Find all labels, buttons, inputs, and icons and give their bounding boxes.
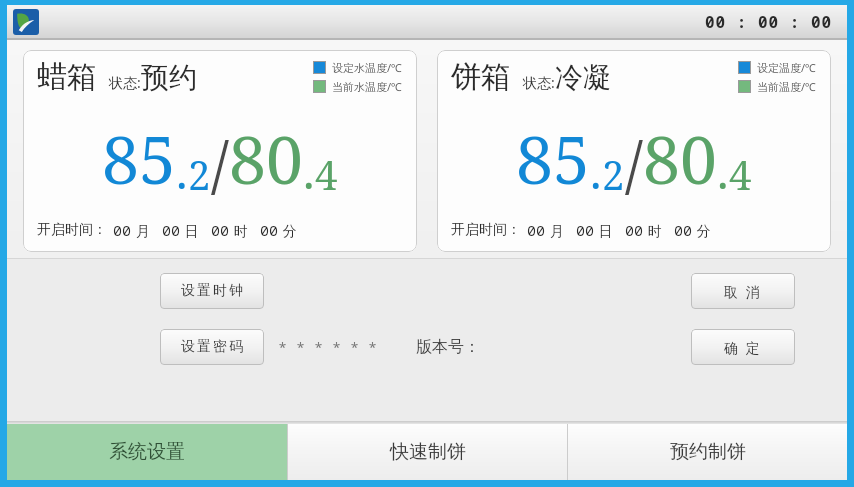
staticText: 确 定 xyxy=(724,338,762,357)
staticText: 设定温度/℃ xyxy=(757,60,817,75)
staticText: 设置时钟 xyxy=(180,282,244,300)
staticText: 00 xyxy=(162,220,181,240)
staticText: 开启时间： xyxy=(37,221,107,239)
staticText: 00 xyxy=(625,220,644,240)
staticText: . xyxy=(717,140,729,203)
staticText: 80 xyxy=(229,113,303,203)
staticText: . xyxy=(303,140,315,203)
staticText: 饼箱 xyxy=(451,58,511,96)
staticText: 月 xyxy=(546,221,564,240)
staticText: 时 xyxy=(644,221,662,240)
button[interactable]: 系统设置 xyxy=(7,424,287,480)
button[interactable]: 饼箱 xyxy=(437,50,831,252)
button[interactable]: 预约制饼 xyxy=(568,424,847,480)
staticText: 设置密码 xyxy=(180,338,244,356)
staticText: 00 xyxy=(260,220,279,240)
staticText: 00 : 00 : 00 xyxy=(705,11,833,33)
staticText: 时 xyxy=(230,221,248,240)
staticText: 版本号： xyxy=(416,337,480,357)
staticText: 00 xyxy=(113,220,132,240)
staticText: / xyxy=(211,121,229,205)
button[interactable]: 蜡箱 xyxy=(23,50,417,252)
staticText: 预约制饼 xyxy=(670,440,746,464)
staticText: 00 xyxy=(674,220,693,240)
button[interactable]: 设置时钟 xyxy=(160,273,264,309)
staticText: 00 xyxy=(576,220,595,240)
staticText: / xyxy=(625,121,643,205)
staticText: 状态: xyxy=(109,73,141,92)
staticText: 设定水温度/℃ xyxy=(332,60,403,75)
staticText: 当前温度/℃ xyxy=(757,79,817,94)
staticText: 开启时间： xyxy=(451,221,521,239)
staticText: 取 消 xyxy=(724,282,762,301)
staticText: 2 xyxy=(602,147,625,201)
staticText: . xyxy=(176,140,188,203)
staticText: 状态: xyxy=(523,73,555,92)
staticText: 快速制饼 xyxy=(390,440,466,464)
staticText: 00 xyxy=(211,220,230,240)
button[interactable]: 快速制饼 xyxy=(288,424,567,480)
staticText: 系统设置 xyxy=(109,440,185,464)
staticText: 日 xyxy=(595,221,613,240)
staticText: 冷凝 xyxy=(555,60,611,95)
staticText: 日 xyxy=(181,221,199,240)
staticText: 2 xyxy=(188,147,211,201)
staticText: 分 xyxy=(693,221,711,240)
button[interactable]: 确 定 xyxy=(691,329,795,365)
staticText: 4 xyxy=(729,147,752,201)
staticText: 80 xyxy=(643,113,717,203)
staticText: 4 xyxy=(315,147,338,201)
button[interactable]: 取 消 xyxy=(691,273,795,309)
staticText: 当前水温度/℃ xyxy=(332,79,403,94)
staticText: 85 xyxy=(516,113,590,203)
button[interactable]: App logo xyxy=(13,9,39,35)
staticText: 月 xyxy=(132,221,150,240)
staticText: 85 xyxy=(102,113,176,203)
staticText: 蜡箱 xyxy=(37,58,97,96)
staticText: . xyxy=(590,140,602,203)
button[interactable]: 设置密码 xyxy=(160,329,264,365)
staticText: * * * * * * xyxy=(278,337,378,357)
staticText: 00 xyxy=(527,220,546,240)
staticText: 预约 xyxy=(141,60,197,95)
staticText: 分 xyxy=(279,221,297,240)
